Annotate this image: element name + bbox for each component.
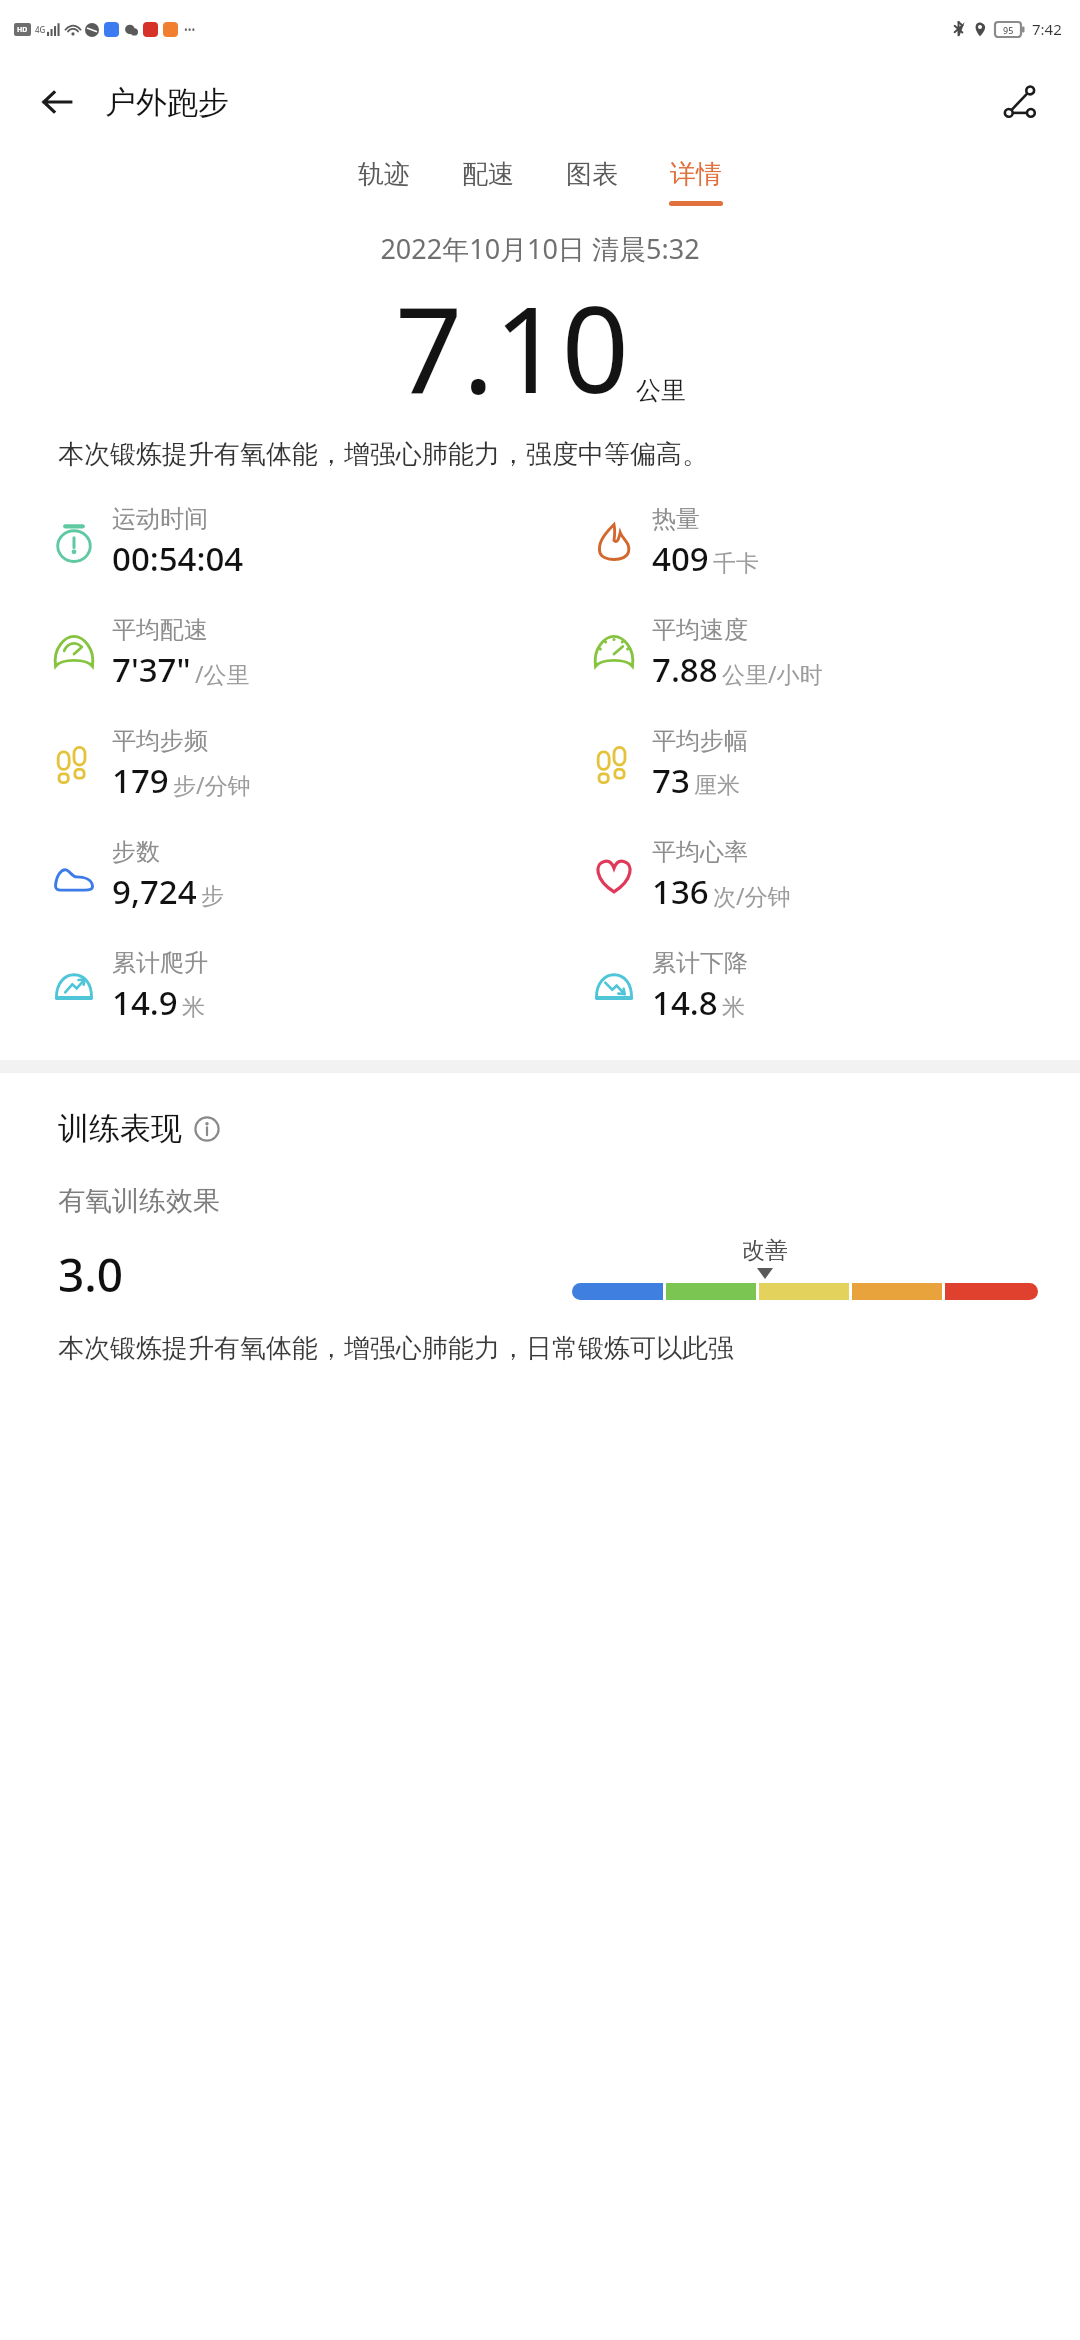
staticText: 步	[201, 882, 224, 911]
staticText: 179	[112, 758, 169, 803]
staticText: 2022年10月10日 清晨5:32	[0, 230, 1080, 267]
button[interactable]: Back	[34, 79, 80, 125]
staticText: 公里/小时	[722, 658, 823, 689]
button[interactable]: 热量	[540, 504, 1080, 581]
staticText: 7:42	[1032, 19, 1062, 39]
button[interactable]: 配速	[436, 152, 540, 212]
button[interactable]: 平均心率	[540, 837, 1080, 914]
staticText: 14.8	[652, 980, 718, 1025]
button[interactable]: 平均步幅	[540, 726, 1080, 803]
button[interactable]: 训练表现	[58, 1109, 220, 1148]
staticText: 热量	[652, 504, 700, 534]
staticText: 次/分钟	[713, 880, 791, 911]
staticText: 平均心率	[652, 837, 748, 867]
button[interactable]: 平均配速	[0, 615, 540, 692]
staticText: 14.9	[112, 980, 178, 1025]
button[interactable]: 平均步频	[0, 726, 540, 803]
staticText: 7.88	[652, 647, 718, 692]
other: Info	[194, 1116, 220, 1142]
staticText: 3.0	[58, 1243, 124, 1306]
staticText: 有氧训练效果	[58, 1184, 220, 1218]
staticText: 米	[722, 993, 745, 1022]
staticText: •••	[184, 23, 196, 37]
staticText: 平均步频	[112, 726, 208, 756]
button[interactable]: 图表	[540, 152, 644, 212]
staticText: 平均步幅	[652, 726, 748, 756]
staticText: 累计下降	[652, 948, 748, 978]
button[interactable]: 累计下降	[540, 948, 1080, 1025]
button[interactable]: 详情	[644, 152, 748, 212]
staticText: 公里	[636, 375, 686, 406]
staticText: 步数	[112, 837, 160, 867]
staticText: 平均速度	[652, 615, 748, 645]
staticText: 7'37"	[112, 647, 191, 692]
staticText: 训练表现	[58, 1109, 182, 1148]
staticText: 千卡	[713, 549, 759, 578]
staticText: 9,724	[112, 869, 197, 914]
button[interactable]: 轨迹	[332, 152, 436, 212]
staticText: 配速	[462, 158, 514, 191]
staticText: 累计爬升	[112, 948, 208, 978]
staticText: 平均配速	[112, 615, 208, 645]
staticText: 步/分钟	[173, 769, 251, 800]
staticText: 4G	[35, 24, 46, 35]
staticText: 本次锻炼提升有氧体能，增强心肺能力，日常锻炼可以此强	[58, 1332, 734, 1365]
staticText: /公里	[195, 658, 250, 689]
staticText: 户外跑步	[105, 83, 229, 122]
button[interactable]: 运动时间	[0, 504, 540, 581]
button[interactable]: 平均速度	[540, 615, 1080, 692]
staticText: 95	[1003, 24, 1014, 36]
button[interactable]: 步数	[0, 837, 540, 914]
staticText: 136	[652, 869, 709, 914]
staticText: 改善	[742, 1236, 788, 1265]
staticText: 7.10	[395, 267, 630, 428]
staticText: 详情	[670, 158, 722, 191]
staticText: 00:54:04	[112, 536, 244, 581]
staticText: 米	[182, 993, 205, 1022]
staticText: 厘米	[694, 771, 740, 800]
staticText: 图表	[566, 158, 618, 191]
button[interactable]: 累计爬升	[0, 948, 540, 1025]
staticText: HD	[17, 25, 28, 35]
staticText: 运动时间	[112, 504, 208, 534]
staticText: 轨迹	[358, 158, 410, 191]
staticText: 本次锻炼提升有氧体能，增强心肺能力，强度中等偏高。	[58, 438, 1022, 471]
staticText: 73	[652, 758, 690, 803]
button[interactable]: Share	[994, 76, 1046, 128]
staticText: 409	[652, 536, 709, 581]
